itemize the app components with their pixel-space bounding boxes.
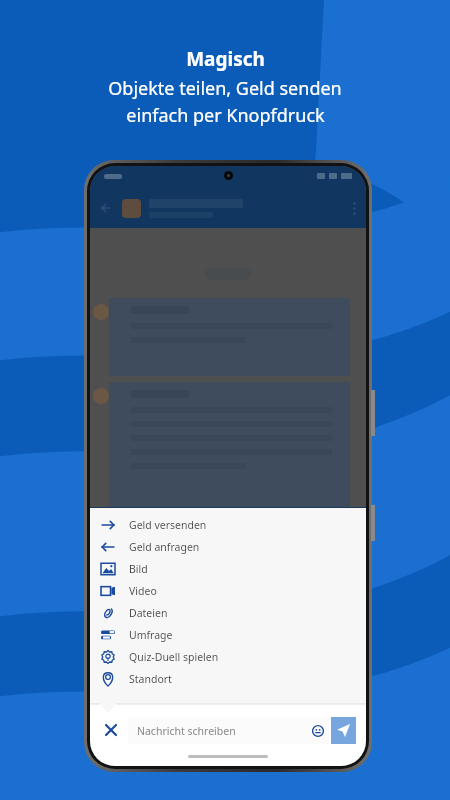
- staticText: Nachricht schreiben: [137, 724, 236, 738]
- other: Back: [100, 202, 112, 214]
- staticText: Umfrage: [129, 628, 173, 642]
- staticText: Video: [129, 584, 157, 598]
- other: More options: [353, 202, 356, 215]
- button[interactable]: Dateien: [90, 602, 366, 624]
- button[interactable]: Standort: [90, 668, 366, 690]
- button[interactable]: Nachricht schreiben: [128, 717, 331, 744]
- button[interactable]: Quiz-Duell spielen: [90, 646, 366, 668]
- button[interactable]: Geld versenden: [90, 514, 366, 536]
- staticText: Dateien: [129, 606, 168, 620]
- button[interactable]: Video: [90, 580, 366, 602]
- other: Emoji: [312, 725, 324, 737]
- staticText: Geld anfragen: [129, 540, 200, 554]
- staticText: Objekte teilen, Geld senden: [108, 76, 342, 101]
- button[interactable]: Umfrage: [90, 624, 366, 646]
- button[interactable]: Send: [331, 717, 356, 744]
- staticText: Magisch: [186, 46, 265, 72]
- staticText: Bild: [129, 562, 148, 576]
- staticText: einfach per Knopfdruck: [126, 103, 325, 128]
- button[interactable]: Close: [98, 717, 124, 743]
- button[interactable]: Geld anfragen: [90, 536, 366, 558]
- staticText: Quiz-Duell spielen: [129, 650, 219, 664]
- staticText: Geld versenden: [129, 518, 207, 532]
- staticText: Standort: [129, 672, 172, 686]
- button[interactable]: Bild: [90, 558, 366, 580]
